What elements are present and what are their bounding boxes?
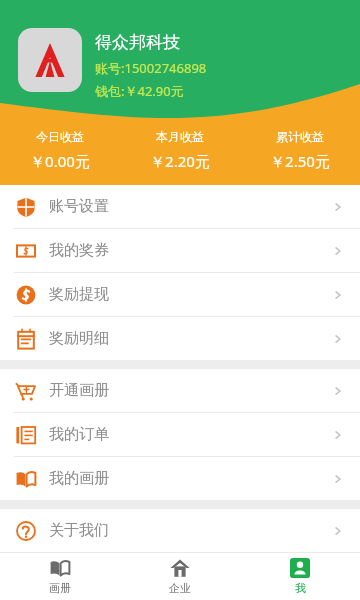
staticText: 企业 <box>169 581 191 595</box>
staticText: 我的奖券 <box>49 241 109 260</box>
button[interactable]: 企业 <box>120 553 240 600</box>
staticText: 得众邦科技 <box>95 32 180 53</box>
staticText: 本月收益 <box>156 129 204 144</box>
staticText: ￥2.50元 <box>270 151 330 171</box>
staticText: ￥2.20元 <box>150 151 210 171</box>
button[interactable]: 我的奖券 <box>0 229 360 272</box>
button[interactable]: 累计收益 <box>240 129 360 171</box>
button[interactable]: 关于我们 <box>0 509 360 552</box>
button[interactable]: 本月收益 <box>120 129 240 171</box>
button[interactable]: 奖励提现 <box>0 273 360 316</box>
button[interactable]: 奖励明细 <box>0 317 360 360</box>
button[interactable]: 今日收益 <box>0 129 120 171</box>
button[interactable]: 画册 <box>0 553 120 600</box>
staticText: 关于我们 <box>49 521 109 540</box>
staticText: 钱包:￥42.90元 <box>95 82 184 100</box>
staticText: 开通画册 <box>49 381 109 400</box>
staticText: 奖励提现 <box>49 285 109 304</box>
button[interactable]: 开通画册 <box>0 369 360 412</box>
staticText: 画册 <box>49 581 71 595</box>
staticText: 累计收益 <box>276 129 324 144</box>
button[interactable]: Company logo <box>18 28 82 92</box>
button[interactable]: 我的画册 <box>0 457 360 500</box>
staticText: 账号:15002746898 <box>95 59 207 77</box>
button[interactable]: 我的订单 <box>0 413 360 456</box>
staticText: 今日收益 <box>36 129 84 144</box>
staticText: 我的画册 <box>49 469 109 488</box>
staticText: ￥0.00元 <box>30 151 90 171</box>
staticText: 我 <box>295 581 306 595</box>
button[interactable]: 账号设置 <box>0 185 360 228</box>
staticText: 我的订单 <box>49 425 109 444</box>
staticText: 奖励明细 <box>49 329 109 348</box>
button[interactable]: 我 <box>240 553 360 600</box>
staticText: 账号设置 <box>49 197 109 216</box>
